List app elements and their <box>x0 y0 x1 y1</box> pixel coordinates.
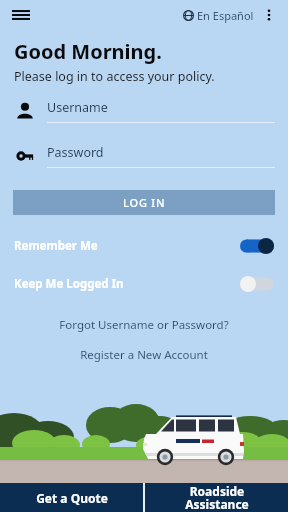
button[interactable]: Password <box>14 144 275 168</box>
staticText: Good Morning. <box>14 38 162 65</box>
staticText: En Español <box>197 8 254 23</box>
staticText: Password <box>47 144 104 161</box>
staticText: Username <box>47 99 108 116</box>
button[interactable]: Roadside Assistance <box>145 483 288 512</box>
staticText: Roadside Assistance <box>185 483 249 512</box>
button[interactable]: Menu <box>6 0 36 30</box>
button[interactable]: En Español <box>183 8 254 23</box>
staticText: Remember Me <box>14 238 98 254</box>
button[interactable]: More options <box>256 2 282 28</box>
button[interactable]: Register a New Account <box>0 347 288 363</box>
staticText: Get a Quote <box>36 490 108 506</box>
staticText: Forgot Username or Password? <box>59 317 229 333</box>
button[interactable]: Username <box>14 99 275 123</box>
button[interactable]: Keep Me Logged In <box>14 273 274 295</box>
button[interactable]: LOG IN <box>13 190 275 215</box>
staticText: Keep Me Logged In <box>14 276 124 292</box>
staticText: LOG IN <box>123 195 166 210</box>
button[interactable]: Remember Me <box>14 235 274 257</box>
staticText: Please log in to access your policy. <box>14 68 215 85</box>
button[interactable]: Get a Quote <box>0 483 143 512</box>
staticText: Register a New Account <box>80 347 208 363</box>
button[interactable]: Forgot Username or Password? <box>0 317 288 333</box>
